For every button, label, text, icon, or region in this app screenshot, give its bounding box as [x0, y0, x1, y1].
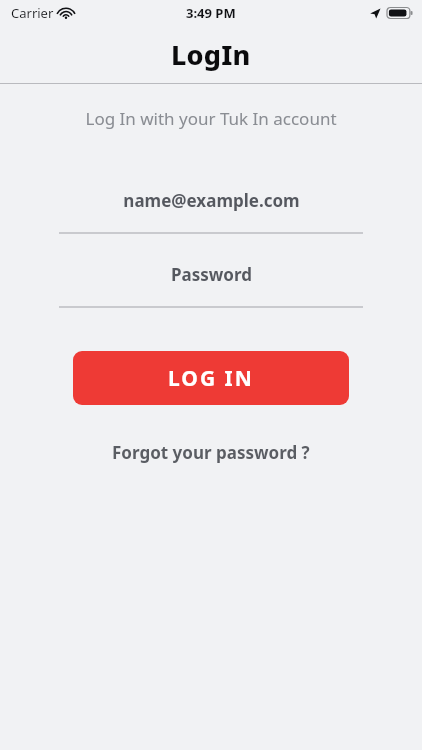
staticText: Password — [171, 263, 252, 286]
button[interactable]: Forgot your password ? — [102, 435, 320, 470]
button[interactable]: name@example.com — [59, 179, 363, 234]
staticText: LOG IN — [168, 364, 254, 393]
staticText: 3:49 PM — [186, 4, 236, 22]
staticText: name@example.com — [123, 189, 300, 212]
staticText: LogIn — [171, 36, 251, 73]
staticText: Log In with your Tuk In account — [85, 107, 337, 130]
staticText: Forgot your password ? — [112, 441, 310, 464]
button[interactable]: Password — [59, 253, 363, 308]
button[interactable]: LOG IN — [73, 351, 349, 405]
staticText: Carrier — [11, 4, 54, 22]
